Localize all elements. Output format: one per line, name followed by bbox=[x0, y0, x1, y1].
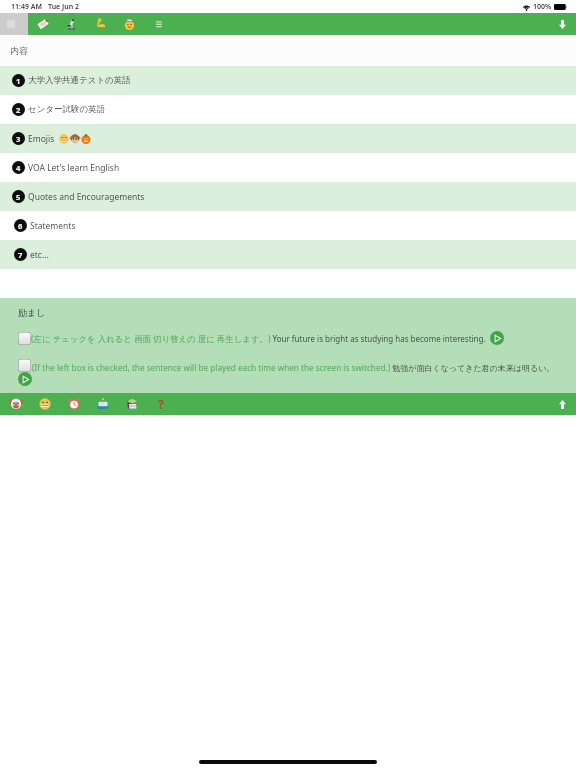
staticText: 4 bbox=[16, 163, 21, 173]
button[interactable]: Check box bbox=[0, 359, 576, 386]
button[interactable]: 6 bbox=[0, 211, 576, 240]
staticText: Statements bbox=[30, 220, 76, 232]
button[interactable]: Cake bbox=[88, 393, 117, 415]
staticText: VOA Let's learn English bbox=[28, 162, 120, 174]
button[interactable]: Muscle bbox=[86, 13, 115, 35]
staticText: センター試験の英語 bbox=[28, 104, 106, 115]
button[interactable]: 5 bbox=[0, 182, 576, 211]
staticText: 3 bbox=[16, 134, 21, 144]
staticText: etc... bbox=[30, 249, 49, 261]
button[interactable]: 2 bbox=[0, 95, 576, 124]
staticText: 内容 bbox=[10, 45, 28, 56]
button[interactable]: Alarm bbox=[59, 393, 88, 415]
staticText: 7 bbox=[18, 250, 23, 260]
button[interactable]: Download bbox=[549, 13, 576, 35]
button[interactable]: 4 bbox=[0, 153, 576, 182]
staticText: 励まし bbox=[18, 307, 46, 318]
staticText: (左に チェックを 入れると 画面 切り替えの 度に 再生します。) Your … bbox=[31, 333, 486, 344]
button[interactable]: Smile bbox=[30, 393, 59, 415]
staticText: 大学入学共通テストの英語 bbox=[28, 75, 131, 86]
button[interactable]: Books bbox=[117, 393, 146, 415]
button[interactable]: 3 bbox=[0, 124, 576, 153]
staticText: Tue Jun 2 bbox=[48, 2, 79, 12]
button[interactable]: Menu bbox=[144, 13, 173, 35]
staticText: 1 bbox=[16, 76, 21, 86]
staticText: Emojis bbox=[28, 133, 55, 145]
button[interactable]: Microscope bbox=[57, 13, 86, 35]
staticText: 2 bbox=[16, 105, 21, 115]
button[interactable]: Play bbox=[490, 331, 504, 345]
staticText: 100% bbox=[533, 2, 552, 12]
staticText: (If the left box is checked, the sentenc… bbox=[32, 362, 555, 373]
button[interactable]: Check box bbox=[18, 359, 31, 372]
staticText: 6 bbox=[18, 221, 23, 231]
button[interactable]: Scroll up bbox=[549, 393, 576, 415]
staticText: 5 bbox=[16, 192, 21, 202]
staticText: 11:49 AM bbox=[11, 2, 42, 12]
button[interactable]: 1 bbox=[0, 66, 576, 95]
button[interactable]: Check box bbox=[18, 332, 31, 345]
staticText: ? bbox=[158, 396, 164, 412]
button[interactable]: Clown bbox=[1, 393, 30, 415]
button[interactable]: 7 bbox=[0, 240, 576, 269]
button[interactable]: Sidebar bbox=[0, 13, 28, 35]
button[interactable]: Check box bbox=[0, 330, 576, 346]
button[interactable]: Angel bbox=[115, 13, 144, 35]
button[interactable]: Help bbox=[146, 393, 175, 415]
button[interactable]: Play bbox=[18, 372, 32, 386]
staticText: Quotes and Encouragements bbox=[28, 191, 145, 203]
button[interactable]: Memo bbox=[28, 13, 57, 35]
